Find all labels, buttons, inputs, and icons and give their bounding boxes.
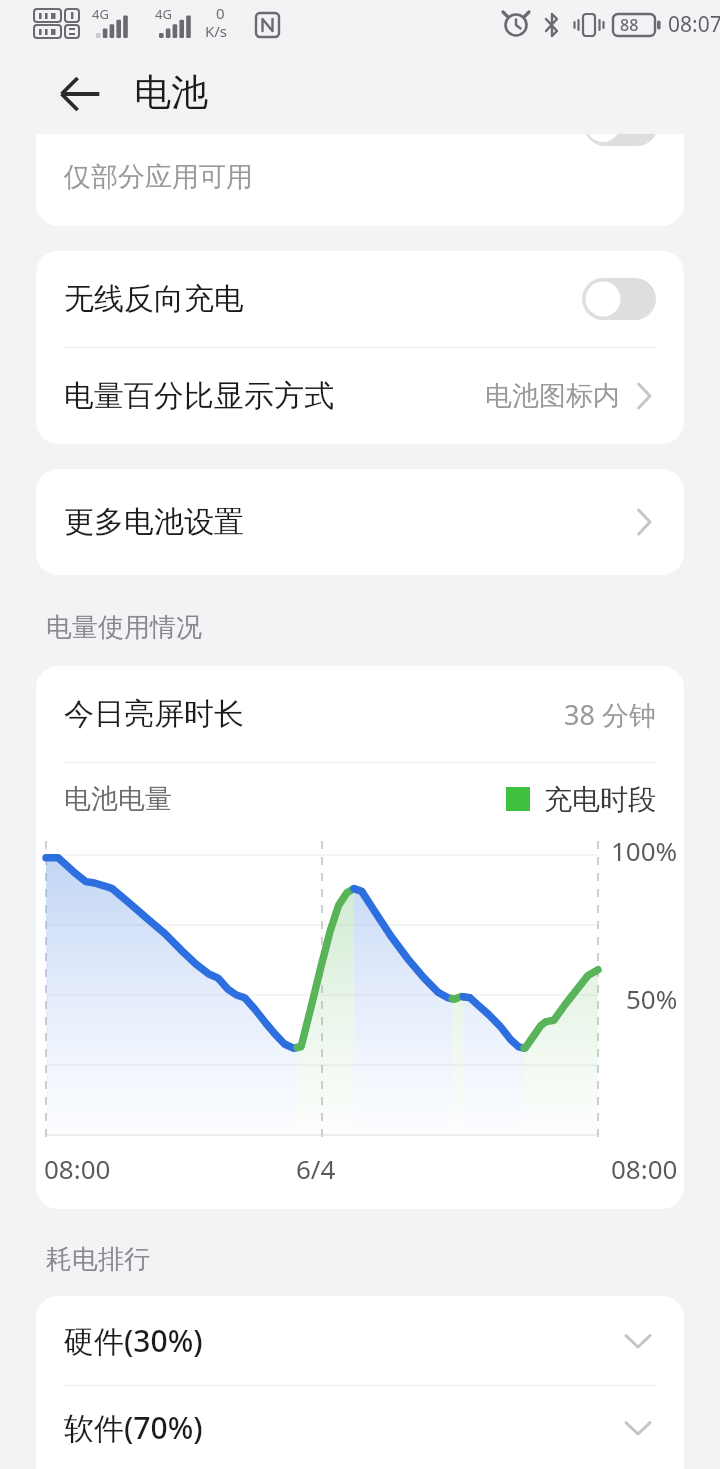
staticText: 充电时段 — [544, 782, 656, 817]
button[interactable]: Back — [46, 60, 114, 128]
staticText: 100% — [611, 833, 678, 868]
staticText: 电池 — [134, 69, 208, 116]
staticText: 电量使用情况 — [46, 611, 202, 644]
staticText: 6/4 — [296, 1151, 336, 1186]
staticText: 50% — [626, 981, 678, 1016]
staticText: 38 分钟 — [564, 696, 656, 733]
staticText: 0 — [216, 3, 225, 23]
staticText: 4G — [155, 5, 172, 23]
button[interactable]: 电量百分比显示方式 — [36, 348, 684, 444]
staticText: 08:00 — [611, 1151, 678, 1186]
staticText: K/s — [205, 21, 228, 41]
button[interactable]: 硬件(30%) — [36, 1296, 684, 1385]
staticText: 软件(70%) — [64, 1407, 203, 1448]
staticText: 88 — [620, 14, 639, 36]
button[interactable]: 仅部分应用可用 — [36, 134, 684, 226]
staticText: 无线反向充电 — [64, 280, 244, 318]
staticText: 电池电量 — [64, 782, 172, 816]
staticText: 更多电池设置 — [64, 503, 244, 541]
button[interactable]: 软件(70%) — [36, 1386, 684, 1469]
staticText: 08:07 — [668, 10, 720, 39]
button[interactable]: 今日亮屏时长 — [36, 666, 684, 762]
staticText: 耗电排行 — [46, 1243, 150, 1276]
staticText: 硬件(30%) — [64, 1320, 203, 1361]
staticText: 今日亮屏时长 — [64, 695, 244, 733]
staticText: 仅部分应用可用 — [64, 160, 253, 194]
staticText: 08:00 — [44, 1151, 111, 1186]
staticText: 电量百分比显示方式 — [64, 377, 334, 415]
staticText: 电池图标内 — [485, 379, 620, 413]
button[interactable]: 更多电池设置 — [36, 469, 684, 575]
staticText: 4G — [92, 5, 109, 23]
button[interactable]: 无线反向充电 — [36, 251, 684, 347]
